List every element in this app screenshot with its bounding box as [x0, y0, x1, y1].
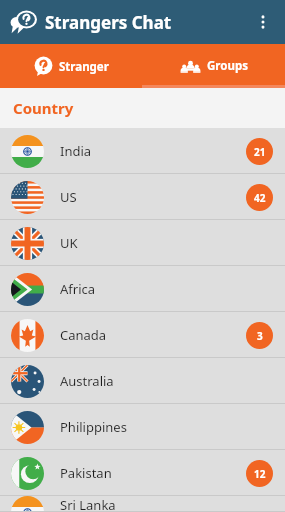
staticText: 12 [254, 467, 266, 481]
staticText: US [60, 188, 77, 206]
staticText: 3 [257, 329, 263, 343]
staticText: Canada [60, 326, 107, 344]
staticText: India [60, 142, 92, 160]
button[interactable]: Canada [0, 312, 285, 358]
staticText: 21 [254, 145, 266, 159]
staticText: Sri Lanka [60, 496, 116, 512]
staticText: Country [13, 98, 74, 118]
button[interactable]: Sri Lanka [0, 496, 285, 512]
staticText: Strangers Chat [45, 11, 172, 34]
staticText: Australia [60, 372, 114, 390]
button[interactable]: More options [245, 4, 281, 40]
staticText: Stranger [59, 59, 109, 75]
button[interactable]: Stranger [0, 44, 142, 88]
staticText: Philippines [60, 418, 127, 436]
button[interactable]: Philippines [0, 404, 285, 450]
staticText: Pakistan [60, 464, 112, 482]
button[interactable]: Pakistan [0, 450, 285, 496]
staticText: Groups [207, 58, 248, 74]
button[interactable]: UK [0, 220, 285, 266]
staticText: UK [60, 234, 78, 252]
button[interactable]: India [0, 128, 285, 174]
button[interactable]: Australia [0, 358, 285, 404]
staticText: Africa [60, 280, 96, 298]
staticText: 42 [254, 191, 266, 205]
button[interactable]: Africa [0, 266, 285, 312]
button[interactable]: Groups [142, 44, 285, 88]
button[interactable]: US [0, 174, 285, 220]
